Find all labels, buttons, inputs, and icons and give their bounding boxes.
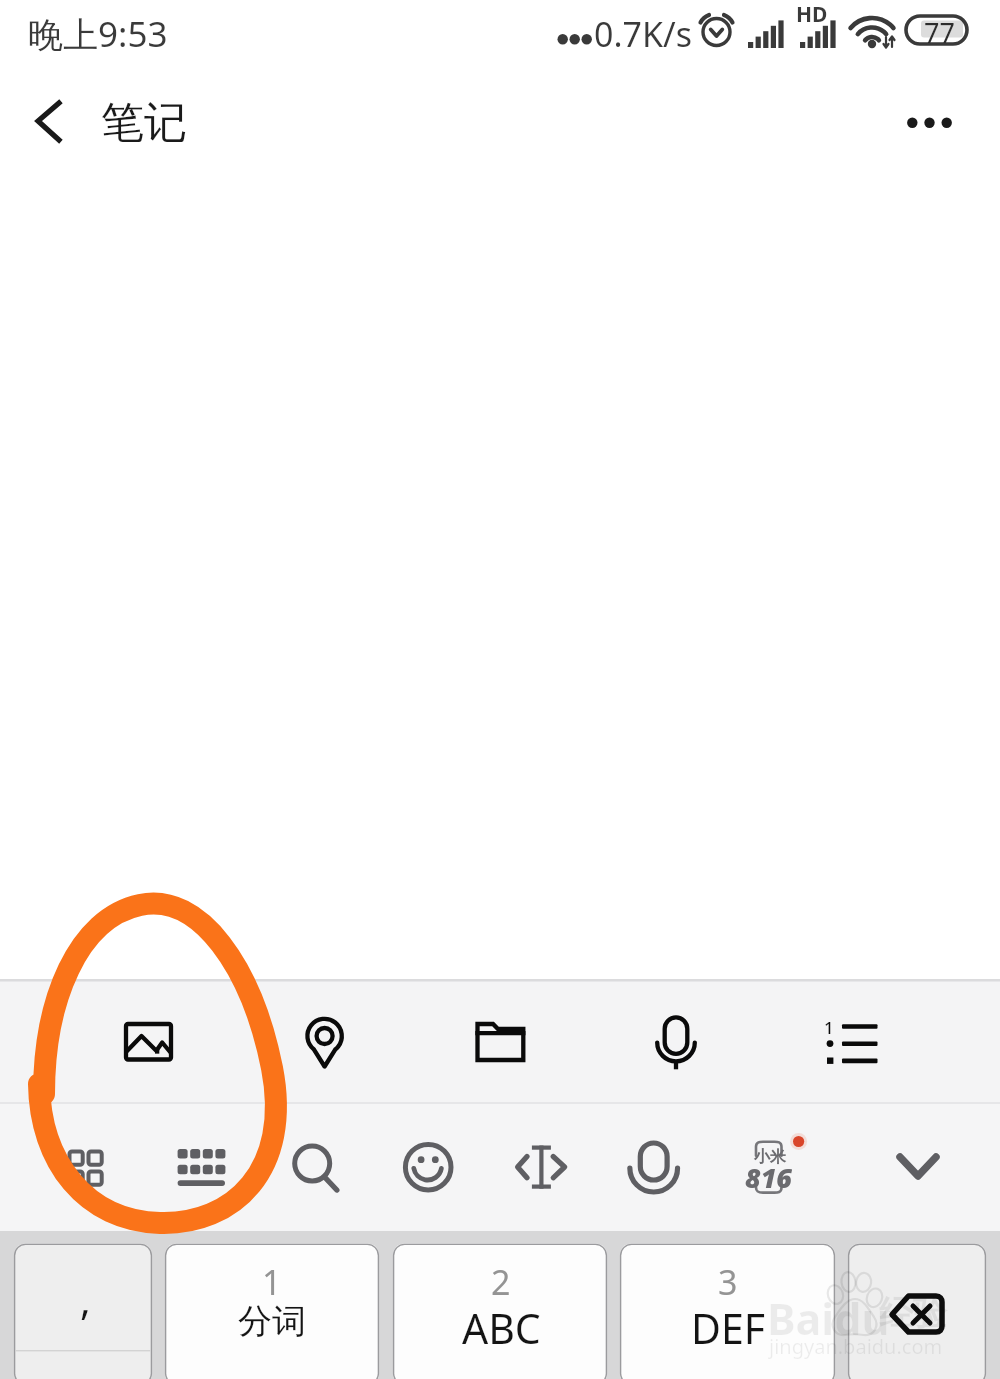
staticText: Baidu (767, 1289, 890, 1348)
staticText: 小米 (754, 1147, 786, 1167)
button[interactable]: Emoji (374, 1103, 482, 1231)
staticText: 77 (924, 14, 955, 51)
button[interactable]: Voice input (600, 1103, 708, 1231)
staticText: DEF (691, 1300, 766, 1356)
button[interactable]: Location (254, 981, 394, 1103)
button[interactable]: Hide keyboard (864, 1103, 982, 1231)
button[interactable]: Xiaomi 816 (712, 1103, 830, 1231)
staticText: 816 (745, 1159, 792, 1189)
staticText: ABC (462, 1300, 541, 1356)
button[interactable]: Backspace (848, 1243, 986, 1379)
button[interactable]: More options (880, 82, 976, 164)
staticText: 1 (824, 1016, 834, 1039)
button[interactable]: Back (10, 82, 88, 164)
staticText: 晚上9:53 (28, 10, 168, 58)
button[interactable]: Keyboard layout (148, 1103, 256, 1231)
button[interactable]: Search (258, 1103, 366, 1231)
button[interactable]: Comma key (14, 1243, 152, 1379)
button[interactable]: Move cursor (487, 1103, 595, 1231)
staticText: 0.7K/s (594, 11, 692, 57)
button[interactable]: Folder (430, 981, 570, 1103)
button[interactable]: Apps (30, 1103, 138, 1231)
staticText: 3 (718, 1259, 738, 1305)
button[interactable]: 1 分词 (165, 1243, 379, 1379)
staticText: 分词 (238, 1300, 306, 1343)
button[interactable]: 3 DEF (620, 1243, 835, 1379)
button[interactable]: 2 ABC (393, 1243, 607, 1379)
staticText: , (80, 1272, 91, 1326)
staticText: HD (796, 0, 828, 29)
staticText: jingyan.baidu.com (769, 1333, 943, 1360)
staticText: 1 (262, 1259, 282, 1305)
staticText: 经验 (879, 1292, 947, 1335)
staticText: 笔记 (101, 96, 187, 150)
button[interactable]: Voice note (606, 981, 746, 1103)
button[interactable]: Insert image (77, 981, 219, 1103)
button[interactable]: Numbered list (782, 981, 922, 1103)
staticText: 2 (491, 1259, 511, 1305)
